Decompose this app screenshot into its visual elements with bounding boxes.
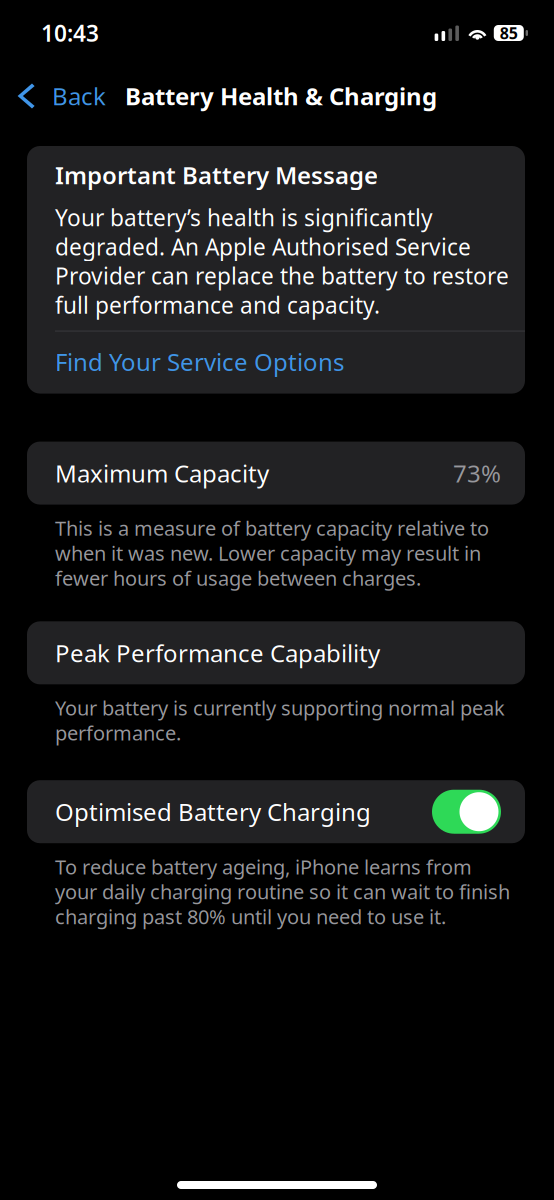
button[interactable]: Maximum Capacity bbox=[0, 442, 525, 505]
staticText: Find Your Service Options bbox=[55, 346, 344, 377]
staticText: Optimised Battery Charging bbox=[55, 796, 371, 828]
button[interactable]: Back bbox=[0, 79, 110, 113]
button[interactable]: Peak Performance Capability bbox=[0, 621, 525, 684]
button[interactable]: Find Your Service Options bbox=[27, 346, 525, 378]
staticText: 73% bbox=[453, 457, 501, 489]
staticText: Your battery is currently supporting nor… bbox=[55, 695, 505, 745]
staticText: To reduce battery ageing, iPhone learns … bbox=[55, 854, 510, 929]
staticText: Important Battery Message bbox=[55, 159, 378, 191]
staticText: 10:43 bbox=[41, 18, 99, 48]
staticText: Maximum Capacity bbox=[55, 457, 269, 489]
staticText: Battery Health & Charging bbox=[125, 80, 437, 112]
button[interactable]: Optimised Battery Charging bbox=[0, 780, 525, 843]
staticText: This is a measure of battery capacity re… bbox=[55, 516, 489, 590]
staticText: Your battery’s health is significantly d… bbox=[55, 203, 509, 320]
staticText: Back bbox=[52, 80, 106, 112]
staticText: Peak Performance Capability bbox=[55, 637, 380, 669]
staticText: 85 bbox=[500, 22, 518, 44]
